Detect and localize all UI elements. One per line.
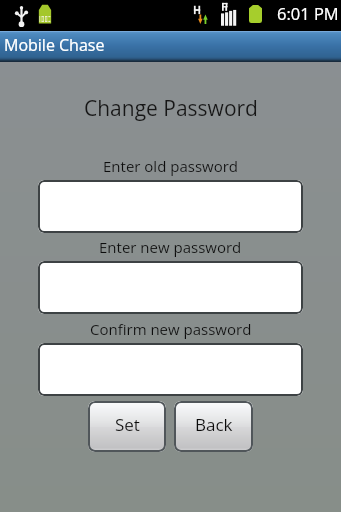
button[interactable] bbox=[38, 180, 303, 233]
staticText: Confirm new password bbox=[90, 319, 252, 339]
staticText: Enter new password bbox=[99, 237, 242, 257]
button[interactable] bbox=[38, 343, 303, 396]
button[interactable]: Back bbox=[174, 401, 253, 452]
staticText: Change Password bbox=[84, 94, 258, 123]
staticText: Mobile Chase bbox=[4, 34, 105, 56]
staticText: Set bbox=[115, 413, 140, 436]
button[interactable] bbox=[38, 261, 303, 314]
staticText: Enter old password bbox=[103, 156, 238, 176]
staticText: 6:01 PM bbox=[277, 2, 339, 24]
staticText: Back bbox=[195, 413, 233, 436]
button[interactable]: Set bbox=[88, 401, 166, 452]
